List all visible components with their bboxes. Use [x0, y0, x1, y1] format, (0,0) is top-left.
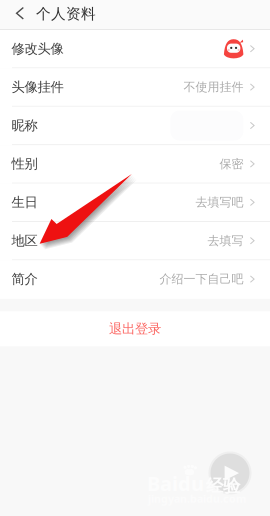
button[interactable]: 简介: [0, 260, 270, 299]
staticText: 性别: [11, 156, 37, 172]
button[interactable]: 修改头像: [0, 30, 270, 68]
staticText: 不使用挂件: [183, 80, 243, 94]
staticText: 保密: [219, 156, 243, 171]
button[interactable]: 头像挂件: [0, 68, 270, 107]
staticText: 去填写吧: [195, 195, 243, 210]
button[interactable]: 退出登录: [0, 311, 270, 346]
button[interactable]: Back: [0, 0, 36, 29]
staticText: 昵称: [11, 117, 37, 134]
staticText: 生日: [11, 194, 37, 210]
staticText: 个人资料: [36, 5, 96, 23]
button[interactable]: 生日: [0, 184, 270, 222]
button[interactable]: 性别: [0, 145, 270, 184]
button[interactable]: 地区: [0, 222, 270, 260]
staticText: 经验: [206, 475, 240, 497]
staticText: 地区: [11, 232, 37, 249]
staticText: 简介: [11, 271, 37, 287]
button[interactable]: 昵称: [0, 107, 270, 145]
staticText: 介绍一下自己吧: [159, 272, 243, 286]
staticText: 修改头像: [11, 40, 63, 57]
staticText: 去填写: [207, 233, 243, 248]
staticText: 头像挂件: [11, 79, 63, 95]
staticText: 退出登录: [109, 321, 161, 337]
